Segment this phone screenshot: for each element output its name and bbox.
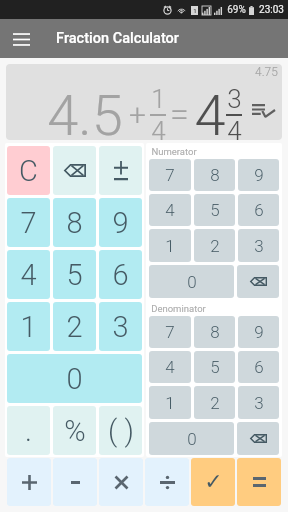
button[interactable]: ( ) xyxy=(99,406,142,455)
button[interactable]: 1 xyxy=(149,229,191,262)
button[interactable]: 8 xyxy=(194,159,235,191)
button[interactable]: 0 xyxy=(149,265,234,298)
staticText: 4 xyxy=(165,200,175,220)
button[interactable]: 2 xyxy=(194,386,235,419)
staticText: C xyxy=(19,154,38,188)
button[interactable]: 9 xyxy=(238,316,279,348)
staticText: 4 xyxy=(165,357,175,377)
staticText: ✓ xyxy=(204,469,223,495)
staticText: 4 xyxy=(151,116,166,140)
button[interactable]: Minus xyxy=(53,458,97,506)
button[interactable]: 4 xyxy=(149,351,191,383)
button[interactable]: C xyxy=(7,146,50,195)
button[interactable]: 2 xyxy=(53,302,96,351)
staticText: 4.75 xyxy=(255,65,278,79)
button[interactable]: 4.75 xyxy=(6,64,282,140)
staticText: 23:03 xyxy=(259,4,284,16)
button[interactable]: Multiply xyxy=(99,458,143,506)
staticText: Denominator xyxy=(151,303,206,314)
staticText: 69% xyxy=(227,4,246,16)
staticText: + xyxy=(129,97,146,132)
staticText: 8 xyxy=(210,165,220,185)
staticText: 7 xyxy=(20,206,37,240)
staticText: 1 xyxy=(20,310,37,344)
button[interactable]: 6 xyxy=(99,250,142,299)
staticText: 9 xyxy=(254,165,264,185)
staticText: 4 xyxy=(20,258,37,292)
button[interactable]: 7 xyxy=(149,316,191,348)
staticText: 6 xyxy=(112,258,129,292)
button[interactable]: ✓ xyxy=(191,458,235,506)
staticText: 3 xyxy=(227,84,242,114)
staticText: 2 xyxy=(66,310,83,344)
staticText: 7 xyxy=(165,165,175,185)
staticText: 3 xyxy=(254,236,264,256)
staticText: 1 xyxy=(165,393,175,413)
button[interactable]: 0 xyxy=(7,354,142,403)
staticText: 6 xyxy=(254,357,264,377)
button[interactable]: Open navigation menu xyxy=(6,24,36,54)
staticText: 3 xyxy=(254,393,264,413)
button[interactable]: 4 xyxy=(149,194,191,226)
staticText: Fraction Calculator xyxy=(56,30,179,47)
staticText: 4 xyxy=(194,83,226,140)
button[interactable]: 3 xyxy=(238,386,279,419)
button[interactable]: 3 xyxy=(99,302,142,351)
staticText: 4.5 xyxy=(47,83,123,140)
button[interactable]: 2 xyxy=(194,229,235,262)
button[interactable]: 1 xyxy=(7,302,50,351)
button[interactable]: 3 xyxy=(238,229,279,262)
staticText: Numerator xyxy=(151,146,197,157)
staticText: 5 xyxy=(66,258,83,292)
staticText: 3 xyxy=(112,310,129,344)
button[interactable]: 5 xyxy=(53,250,96,299)
button[interactable]: Backspace Numerator xyxy=(237,265,279,298)
button[interactable]: 8 xyxy=(53,198,96,247)
button[interactable]: Backspace xyxy=(53,146,96,195)
button[interactable]: 7 xyxy=(7,198,50,247)
staticText: 8 xyxy=(66,206,83,240)
staticText: 2 xyxy=(210,236,220,256)
staticText: 7 xyxy=(165,322,175,342)
button[interactable]: Divide xyxy=(145,458,189,506)
button[interactable]: Show history xyxy=(251,100,275,122)
staticText: 5 xyxy=(210,200,220,220)
staticText: % xyxy=(64,414,86,448)
staticText: 1 xyxy=(165,236,175,256)
button[interactable]: 7 xyxy=(149,159,191,191)
staticText: 2 xyxy=(210,393,220,413)
button[interactable]: Toggle sign xyxy=(99,146,142,195)
button[interactable]: 8 xyxy=(194,316,235,348)
staticText: 0 xyxy=(187,272,197,292)
button[interactable]: . xyxy=(7,406,50,455)
button[interactable]: 1 xyxy=(149,386,191,419)
button[interactable]: Equals xyxy=(237,458,281,506)
staticText: 4 xyxy=(227,116,242,140)
staticText: . xyxy=(25,414,32,448)
staticText: 9 xyxy=(254,322,264,342)
button[interactable]: Backspace Denominator xyxy=(237,422,279,455)
staticText: 1 xyxy=(193,7,197,14)
staticText: 0 xyxy=(187,429,197,449)
button[interactable]: 5 xyxy=(194,194,235,226)
button[interactable]: 0 xyxy=(149,422,234,455)
button[interactable]: Plus xyxy=(7,458,51,506)
staticText: 6 xyxy=(254,200,264,220)
button[interactable]: 4 xyxy=(7,250,50,299)
staticText: 0 xyxy=(66,362,83,396)
button[interactable]: % xyxy=(53,406,96,455)
button[interactable]: 5 xyxy=(194,351,235,383)
button[interactable]: 6 xyxy=(238,351,279,383)
staticText: = xyxy=(170,94,189,134)
button[interactable]: 9 xyxy=(99,198,142,247)
button[interactable]: 6 xyxy=(238,194,279,226)
staticText: 5 xyxy=(210,357,220,377)
staticText: 1 xyxy=(151,84,166,114)
staticText: 8 xyxy=(210,322,220,342)
button[interactable]: 9 xyxy=(238,159,279,191)
staticText: ( ) xyxy=(108,414,134,448)
staticText: 9 xyxy=(112,206,129,240)
